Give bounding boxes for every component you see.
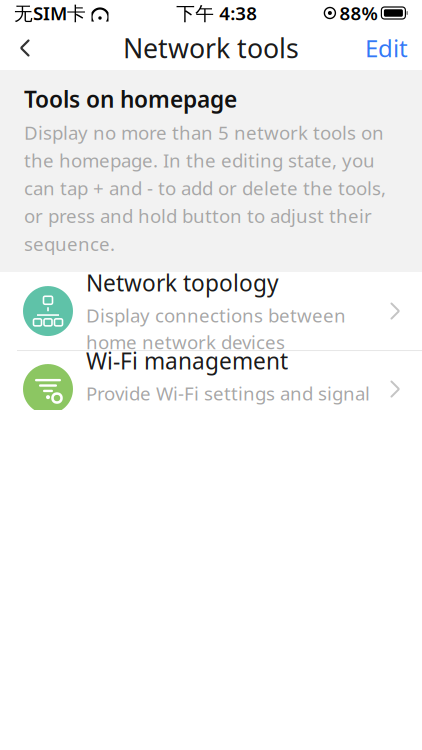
staticText: Wi-Fi management (86, 346, 288, 376)
staticText: Tools on homepage (24, 84, 237, 114)
button[interactable]: Network topology (0, 272, 422, 350)
staticText: Provide Wi-Fi settings and signal streng… (86, 381, 370, 432)
staticText: Edit (365, 32, 408, 64)
button[interactable]: Edit (351, 26, 422, 70)
staticText: 下午 4:38 (176, 1, 257, 25)
staticText: Network topology (86, 268, 279, 298)
staticText: Display no more than 5 network tools on … (24, 120, 386, 256)
staticText: 无SIM卡 (14, 1, 86, 25)
staticText: Network tools (123, 30, 299, 66)
button[interactable]: Wi-Fi management (0, 351, 422, 427)
staticText: Display connections between home network… (86, 303, 346, 354)
button[interactable]: Back (0, 26, 50, 70)
staticText: 88% (339, 1, 377, 25)
